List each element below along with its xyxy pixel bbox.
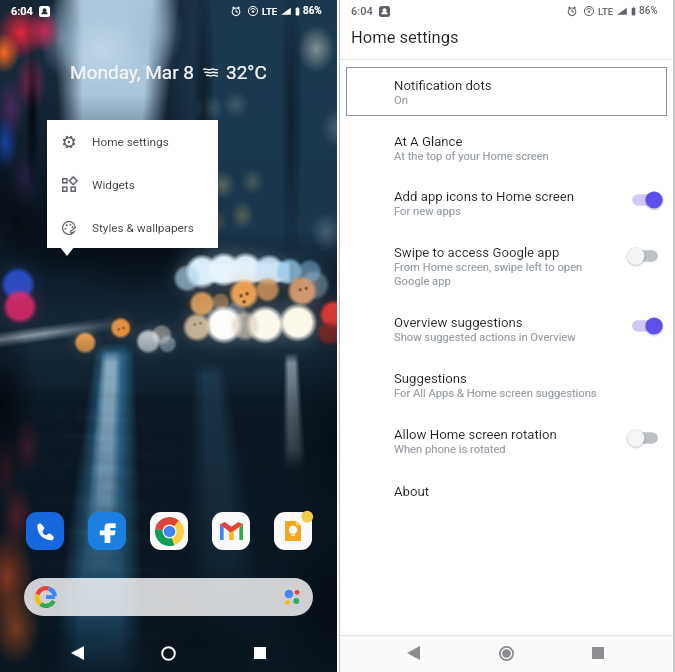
button[interactable]: Back [395,635,431,671]
button[interactable]: Chrome [150,512,188,550]
staticText: Add app icons to Home screen [394,189,575,204]
button[interactable]: On [627,190,663,210]
button[interactable]: Add app icons to Home screen [340,189,673,229]
button[interactable]: Keep Notes [274,512,312,550]
staticText: 6:04 [351,5,373,18]
staticText: For All Apps & Home screen suggestions [394,387,597,400]
button[interactable]: Allow Home screen rotation [340,427,673,467]
button[interactable]: Back [59,635,95,671]
staticText: At the top of your Home screen [394,150,549,163]
staticText: LTE [262,6,278,17]
staticText: 86% [639,5,658,17]
staticText: Styles & wallpapers [92,221,194,235]
staticText: Show suggested actions in Overview [394,331,576,344]
button[interactable]: Home settings [47,120,218,163]
staticText: Allow Home screen rotation [394,427,557,442]
staticText: Home settings [351,28,459,47]
button[interactable]: Suggestions [340,371,673,411]
staticText: Widgets [92,178,135,192]
button[interactable]: Overview suggestions [340,315,673,355]
staticText: Swipe to access Google app [394,245,560,260]
button[interactable]: Widgets [47,163,218,206]
staticText: Overview suggestions [394,315,523,330]
staticText: Suggestions [394,371,467,386]
button[interactable]: Off [627,428,663,448]
button[interactable]: Recents [242,635,278,671]
staticText: Monday, Mar 8 [70,61,195,83]
staticText: At A Glance [394,134,463,149]
staticText: Notification dots [394,78,492,93]
staticText: 86% [303,5,322,17]
button[interactable]: About [340,484,673,518]
staticText: On [394,94,408,107]
staticText: 32°C [226,61,267,83]
staticText: When phone is rotated [394,443,506,456]
button[interactable] [24,578,313,616]
button[interactable]: Gmail [212,512,250,550]
button[interactable]: Notification dots [346,67,667,116]
button[interactable]: Recents [580,635,616,671]
staticText: 6:04 [11,5,33,18]
button[interactable]: Off [627,246,663,266]
button[interactable]: On [627,316,663,336]
button[interactable]: Facebook [88,512,126,550]
button[interactable]: Home [150,635,186,671]
staticText: For new apps [394,205,461,218]
button[interactable]: Styles & wallpapers [47,206,218,249]
staticText: Home settings [92,135,169,149]
staticText: About [394,484,430,499]
staticText: From Home screen, swipe left to open Goo… [394,261,583,288]
button[interactable]: Phone [26,512,64,550]
staticText: LTE [598,6,614,17]
button[interactable]: Swipe to access Google app [340,245,673,297]
button[interactable]: At A Glance [340,134,673,174]
button[interactable]: Home [488,635,524,671]
